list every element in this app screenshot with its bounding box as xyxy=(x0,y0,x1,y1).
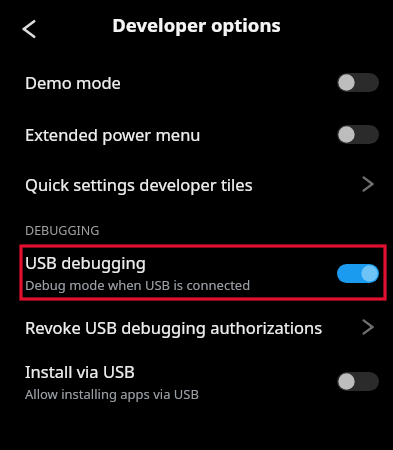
staticText: DEBUGGING xyxy=(25,222,100,239)
button[interactable]: USB debugging xyxy=(21,246,385,299)
staticText: Debug mode when USB is connected xyxy=(25,276,251,294)
button[interactable]: Demo mode toggle xyxy=(337,71,379,93)
staticText: Extended power menu xyxy=(25,123,201,145)
button[interactable]: USB debugging toggle xyxy=(337,262,379,284)
button[interactable]: Back xyxy=(13,13,45,45)
staticText: Install via USB xyxy=(25,360,135,382)
staticText: Allow installing apps via USB xyxy=(25,385,199,403)
staticText: Revoke USB debugging authorizations xyxy=(25,316,323,338)
button[interactable]: Extended power menu xyxy=(0,108,393,159)
staticText: Demo mode xyxy=(25,71,121,93)
button[interactable]: Quick settings developer tiles xyxy=(0,159,393,209)
staticText: Developer options xyxy=(112,12,281,37)
staticText: USB debugging xyxy=(25,251,146,273)
button[interactable]: Extended power menu toggle xyxy=(337,123,379,145)
button[interactable]: Demo mode xyxy=(0,56,393,108)
button[interactable]: Revoke USB debugging authorizations xyxy=(0,301,393,353)
button[interactable]: Install via USB xyxy=(0,353,393,409)
button[interactable]: Install via USB toggle xyxy=(337,370,379,392)
staticText: Quick settings developer tiles xyxy=(25,173,253,195)
